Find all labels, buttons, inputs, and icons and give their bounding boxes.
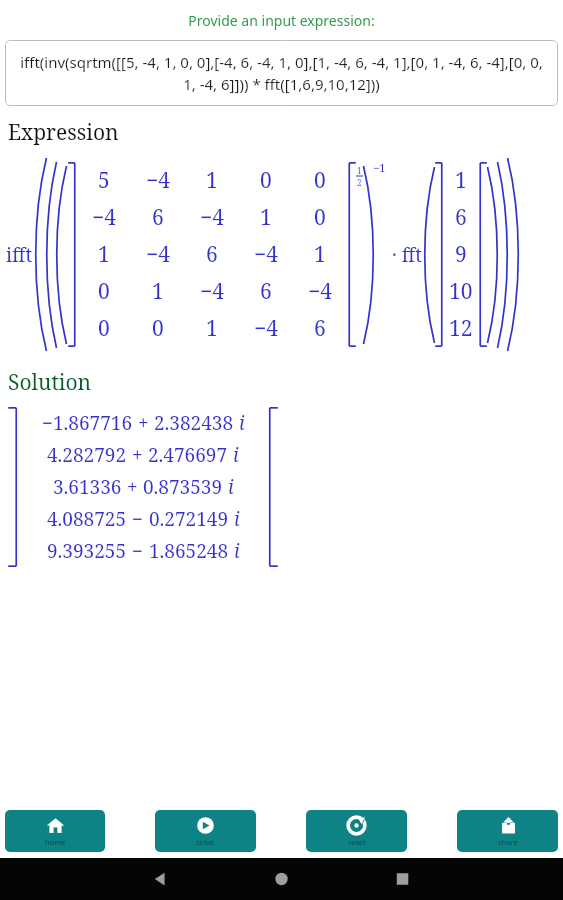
staticText: solve [196, 837, 215, 847]
staticText: reset [348, 837, 366, 847]
staticText: 2.476697 [148, 442, 228, 468]
staticText: −1 [373, 160, 386, 175]
staticText: + [138, 410, 149, 436]
staticText: 0 [98, 314, 110, 343]
staticText: Provide an input expression: [0, 11, 563, 30]
staticText: 1 [314, 240, 326, 269]
staticText: − [132, 506, 144, 532]
staticText: 0 [314, 166, 326, 195]
staticText: 4.282792 [47, 442, 127, 468]
button[interactable]: home [5, 810, 105, 852]
staticText: 1 [206, 314, 218, 343]
staticText: −4 [146, 166, 170, 195]
staticText: 2 [357, 177, 362, 188]
staticText: 0.272149 [149, 506, 229, 532]
staticText: 4.088725 [47, 506, 127, 532]
staticText: 6 [455, 203, 467, 232]
staticText: − [132, 538, 144, 564]
staticText: 6 [314, 314, 326, 343]
staticText: Expression [8, 118, 119, 147]
staticText: ifft [6, 242, 33, 268]
staticText: 3.61336 [53, 474, 122, 500]
staticText: Solution [8, 368, 92, 397]
staticText: 2.382438 [154, 410, 234, 436]
staticText: 0 [152, 314, 164, 343]
staticText: ifft(inv(sqrtm([[5, -4, 1, 0, 0],[-4, 6,… [13, 52, 550, 95]
staticText: 1 [152, 277, 164, 306]
staticText: −4 [92, 203, 116, 232]
staticText: −4 [254, 240, 278, 269]
staticText: −4 [200, 203, 224, 232]
staticText: i [228, 474, 234, 500]
staticText: 6 [206, 240, 218, 269]
staticText: 0.873539 [143, 474, 223, 500]
staticText: −4 [200, 277, 224, 306]
staticText: 0 [314, 203, 326, 232]
staticText: 10 [449, 277, 473, 306]
staticText: −1.867716 [42, 410, 133, 436]
staticText: 0 [260, 166, 272, 195]
staticText: 1 [357, 165, 362, 176]
staticText: 5 [98, 166, 110, 195]
staticText: −4 [308, 277, 332, 306]
staticText: · fft [392, 242, 422, 268]
staticText: share [498, 837, 518, 847]
staticText: 6 [152, 203, 164, 232]
button[interactable]: reset [306, 810, 407, 852]
staticText: −4 [254, 314, 278, 343]
staticText: 1 [98, 240, 110, 269]
staticText: i [234, 538, 240, 564]
staticText: 0 [98, 277, 110, 306]
staticText: 1 [260, 203, 272, 232]
staticText: 1 [206, 166, 218, 195]
staticText: i [234, 506, 240, 532]
staticText: 12 [449, 314, 473, 343]
staticText: −4 [146, 240, 170, 269]
staticText: 1.865248 [149, 538, 229, 564]
staticText: i [239, 410, 245, 436]
staticText: i [233, 442, 239, 468]
staticText: + [132, 442, 143, 468]
staticText: 9 [455, 240, 467, 269]
staticText: 9.393255 [47, 538, 127, 564]
staticText: 1 [455, 166, 467, 195]
staticText: 6 [260, 277, 272, 306]
button[interactable]: ifft(inv(sqrtm([[5, -4, 1, 0, 0],[-4, 6,… [5, 40, 558, 106]
staticText: home [45, 837, 66, 847]
button[interactable]: solve [155, 810, 256, 852]
staticText: + [127, 474, 138, 500]
button[interactable]: share [457, 810, 558, 852]
